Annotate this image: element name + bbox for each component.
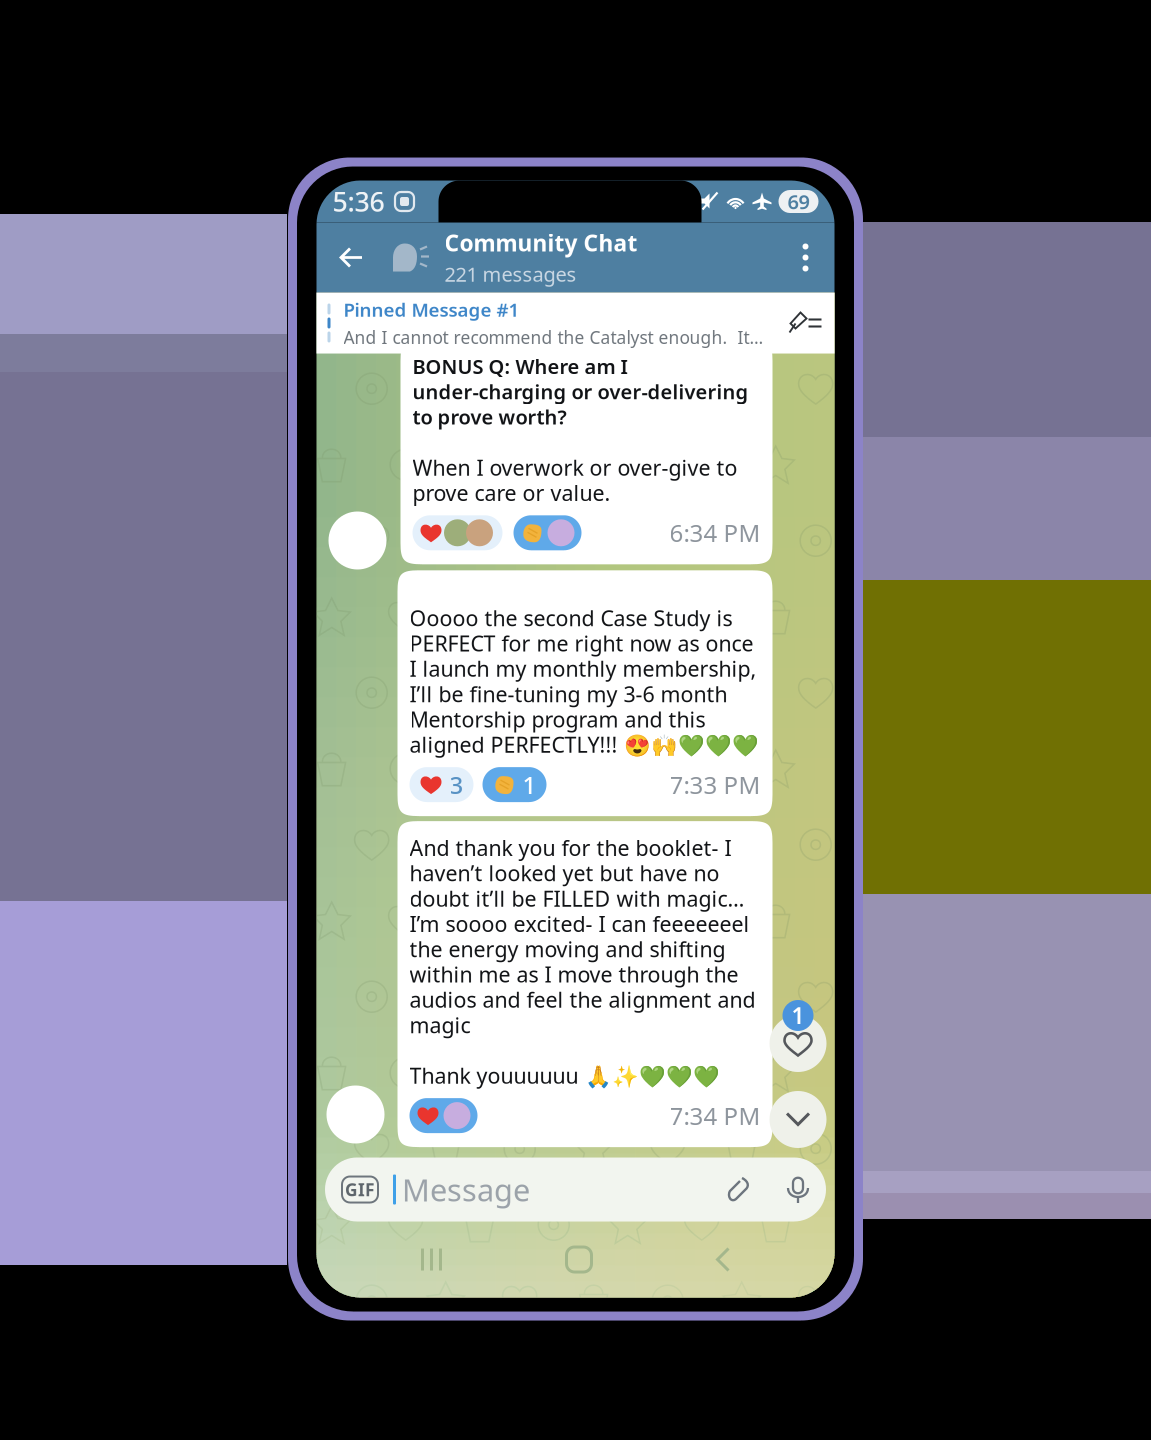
staticText: I launch my monthly membership, [409,654,756,683]
staticText: 7:34 PM [669,1100,760,1132]
button[interactable]: Back [322,222,380,292]
staticText: 3 [449,769,463,801]
staticText: to prove worth? [412,403,566,430]
staticText: When I overwork or over-give to [412,453,737,481]
staticText: under-charging or over-delivering [412,378,748,405]
staticText: Message [402,1169,530,1210]
staticText: PERFECT for me right now as once [409,629,753,657]
staticText: doubt it’ll be FILLED with magic… [409,884,744,912]
staticText: 1 [791,1000,804,1030]
staticText: 221 messages [444,261,576,287]
staticText: Thank youuuuuu 🙏✨💚💚💚 [409,1061,719,1090]
staticText: 69 [787,188,809,215]
staticText: I’ll be fine-tuning my 3-6 month [409,680,727,708]
button[interactable]: GIF [342,1176,378,1202]
button[interactable]: Home [546,1227,611,1292]
staticText: 5:36 [332,184,384,219]
button[interactable]: Voice message [788,1175,809,1204]
staticText: within me as I move through the [409,960,738,988]
button[interactable]: Back [695,1227,750,1291]
staticText: 6:34 PM [669,517,760,549]
staticText: Pinned Message #1 [343,297,519,322]
button[interactable]: Attach [727,1175,752,1204]
button[interactable]: Pinned Message #1 [316,292,834,353]
staticText: aligned PERFECTLY!!! 😍🙌💚💚💚 [409,730,758,759]
button[interactable]: Scroll to bottom [769,1091,826,1148]
button[interactable]: Recent apps [400,1228,462,1290]
staticText: audios and feel the alignment and [409,985,755,1014]
staticText: prove care or value. [412,478,610,507]
staticText: Community Chat [444,228,637,258]
staticText: 1 [522,769,536,801]
button[interactable]: More options [782,222,828,292]
staticText: Mentorship program and this [409,705,705,733]
staticText: GIF [345,1178,375,1201]
staticText: magic [409,1011,470,1039]
staticText: I’m soooo excited- I can feeeeeeel [409,909,749,938]
staticText: And thank you for the booklet- I [409,834,731,862]
staticText: the energy moving and shifting [409,935,725,963]
staticText: Ooooo the second Case Study is [409,604,732,632]
staticText: 7:33 PM [669,769,760,801]
staticText: BONUS Q: Where am I [412,353,627,379]
button[interactable]: Reactions [769,1015,826,1072]
staticText: haven’t looked yet but have no [409,859,719,887]
staticText: And I cannot recommend the Catalyst enou… [343,326,763,349]
